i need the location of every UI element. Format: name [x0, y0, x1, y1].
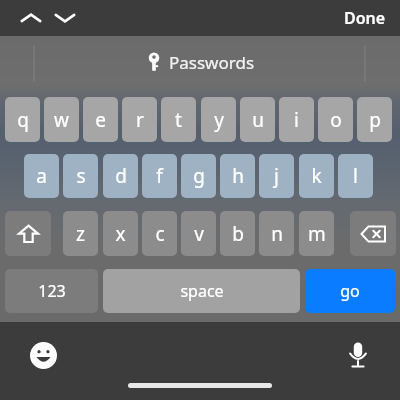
staticText: r	[136, 107, 144, 133]
button[interactable]: k	[299, 154, 334, 198]
button[interactable]: r	[122, 97, 157, 142]
button[interactable]: e	[83, 97, 118, 142]
staticText: d	[115, 163, 127, 189]
button[interactable]: p	[357, 97, 392, 142]
button[interactable]: Previous field	[14, 2, 48, 34]
staticText: n	[271, 221, 283, 247]
button[interactable]: n	[259, 211, 294, 256]
button[interactable]: o	[318, 97, 353, 142]
button[interactable]: Shift	[5, 211, 51, 256]
button[interactable]: w	[44, 97, 79, 142]
button[interactable]: v	[181, 211, 216, 256]
button[interactable]: go	[305, 269, 395, 313]
button[interactable]: b	[220, 211, 255, 256]
button[interactable]: d	[103, 154, 138, 198]
staticText: e	[95, 107, 106, 133]
staticText: space	[180, 280, 224, 302]
staticText: o	[330, 107, 342, 133]
staticText: k	[311, 163, 322, 189]
button[interactable]: t	[161, 97, 196, 142]
staticText: z	[76, 221, 85, 247]
button[interactable]: space	[103, 269, 300, 313]
staticText: y	[214, 107, 224, 133]
button[interactable]: Dictation	[341, 338, 375, 372]
staticText: v	[194, 221, 204, 247]
button[interactable]: g	[181, 154, 216, 198]
staticText: c	[155, 221, 165, 247]
button[interactable]: y	[201, 97, 236, 142]
staticText: Passwords	[169, 51, 255, 74]
button[interactable]: z	[63, 211, 98, 256]
button[interactable]: Done	[340, 3, 390, 33]
button[interactable]: s	[63, 154, 98, 198]
staticText: u	[252, 107, 264, 133]
staticText: p	[369, 107, 381, 133]
button[interactable]: 123	[5, 269, 98, 313]
staticText: Done	[344, 7, 386, 29]
button[interactable]: h	[220, 154, 255, 198]
button[interactable]: Passwords	[146, 51, 255, 74]
staticText: x	[115, 221, 126, 247]
button[interactable]: f	[142, 154, 177, 198]
staticText: s	[76, 163, 86, 189]
button[interactable]: a	[24, 154, 59, 198]
staticText: w	[54, 107, 69, 133]
button[interactable]: l	[338, 154, 373, 198]
button[interactable]: u	[240, 97, 275, 142]
staticText: g	[193, 163, 205, 189]
staticText: 123	[38, 280, 66, 302]
button[interactable]: x	[103, 211, 138, 256]
button[interactable]: q	[5, 97, 40, 142]
staticText: l	[353, 163, 358, 189]
button[interactable]: Next field	[48, 2, 82, 34]
staticText: m	[308, 221, 326, 247]
staticText: a	[36, 163, 47, 189]
staticText: f	[156, 163, 163, 189]
staticText: t	[175, 107, 182, 133]
staticText: h	[232, 163, 244, 189]
button[interactable]: c	[142, 211, 177, 256]
staticText: i	[294, 107, 299, 133]
button[interactable]: j	[259, 154, 294, 198]
button[interactable]: Backspace	[350, 211, 396, 256]
staticText: j	[274, 163, 279, 189]
staticText: b	[232, 221, 244, 247]
button[interactable]: m	[299, 211, 334, 256]
button[interactable]: i	[279, 97, 314, 142]
staticText: q	[17, 107, 29, 133]
staticText: go	[340, 280, 360, 302]
button[interactable]: Emoji keyboard	[26, 338, 60, 372]
